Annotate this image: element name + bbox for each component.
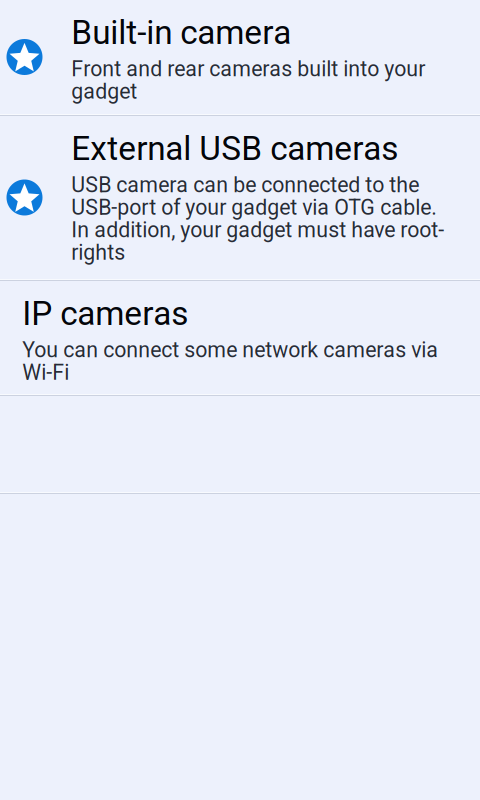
staticText: USB camera can be connected to the (71, 172, 419, 197)
staticText: You can connect some network cameras via (22, 337, 438, 362)
button[interactable]: External USB cameras (0, 116, 480, 279)
staticText: External USB cameras (71, 129, 398, 168)
staticText: In addition, your gadget must have root- (71, 217, 444, 242)
staticText: gadget (71, 79, 137, 104)
staticText: Front and rear cameras built into your (71, 56, 425, 81)
staticText: rights (71, 240, 125, 265)
staticText: IP cameras (22, 294, 188, 333)
staticText: USB-port of your gadget via OTG cable. (71, 195, 437, 220)
button[interactable]: IP cameras (0, 281, 480, 394)
staticText: Wi-Fi (22, 360, 69, 385)
button[interactable]: Built-in camera (0, 0, 480, 114)
staticText: Built-in camera (71, 13, 291, 52)
